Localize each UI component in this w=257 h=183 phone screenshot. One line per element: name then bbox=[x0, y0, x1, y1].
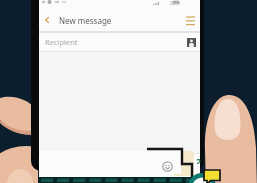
button[interactable]: Back bbox=[39, 12, 55, 28]
button[interactable]: Menu bbox=[181, 11, 199, 29]
button[interactable]: Contacts bbox=[183, 34, 199, 50]
staticText: 38% bbox=[170, 0, 180, 7]
staticText: Recipient bbox=[45, 37, 78, 47]
button[interactable]: Emoji bbox=[161, 160, 173, 172]
staticText: New message bbox=[59, 15, 112, 26]
staticText: 2 bbox=[196, 155, 202, 164]
button[interactable]: Recipient bbox=[39, 33, 200, 51]
